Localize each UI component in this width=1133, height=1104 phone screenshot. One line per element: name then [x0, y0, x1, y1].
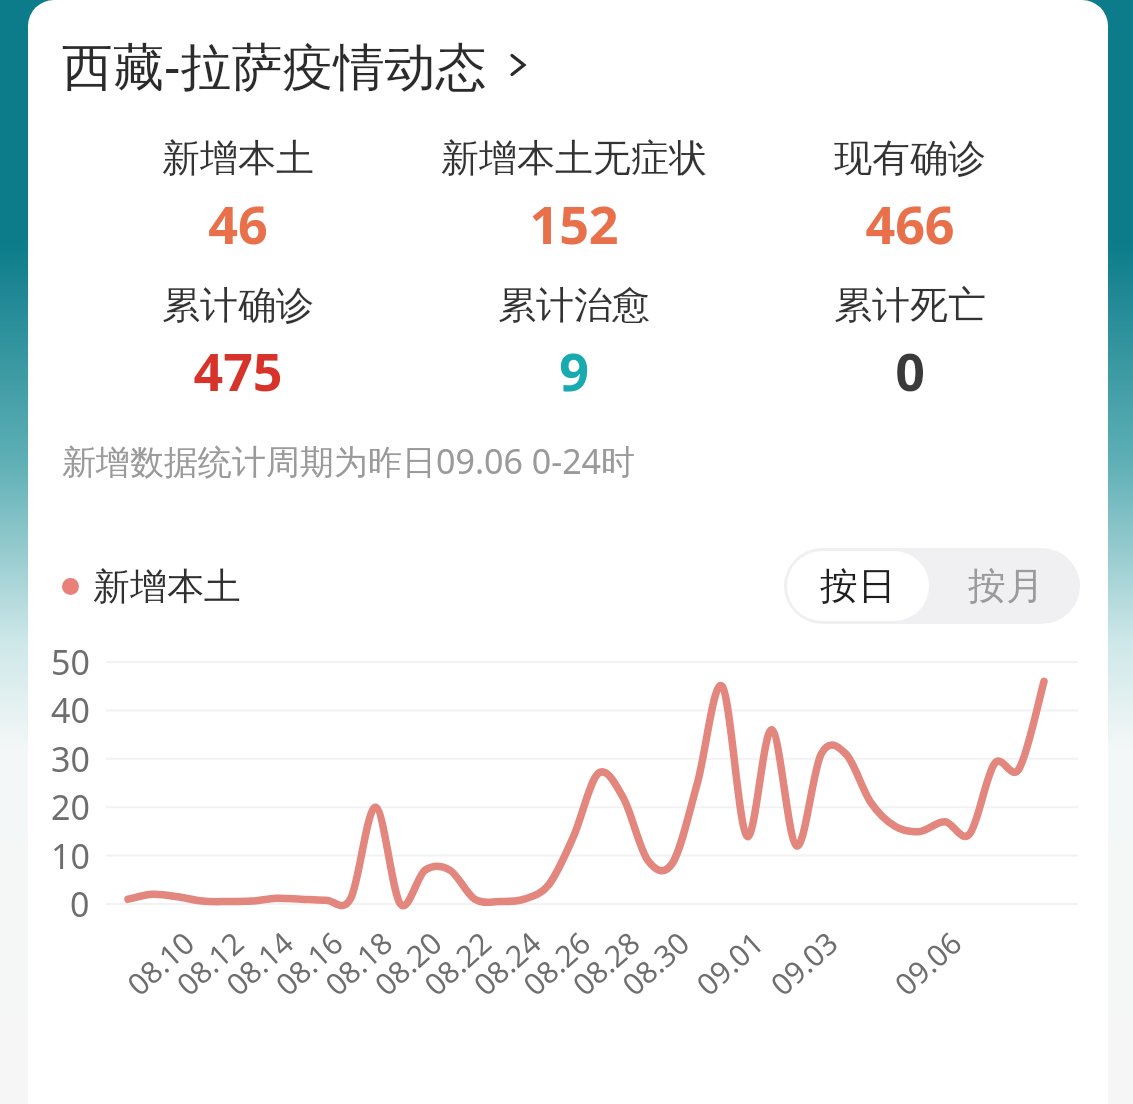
button[interactable]: 现有确诊 — [742, 134, 1078, 259]
staticText: 按月 — [968, 562, 1044, 610]
staticText: 466 — [865, 188, 955, 259]
button[interactable]: 新增本土 — [70, 134, 406, 259]
button[interactable]: 累计确诊 — [70, 281, 406, 406]
button[interactable]: 按月 — [932, 548, 1080, 624]
button[interactable]: 新增本土 — [62, 563, 241, 610]
button[interactable]: 新增本土无症状 — [406, 134, 742, 259]
staticText: 9 — [559, 335, 589, 406]
staticText: 0 — [895, 335, 925, 406]
button[interactable]: 累计死亡 — [742, 281, 1078, 406]
staticText: 新增本土 — [162, 134, 314, 182]
button[interactable]: 累计治愈 — [406, 281, 742, 406]
staticText: 152 — [529, 188, 619, 259]
staticText: 按日 — [820, 562, 896, 610]
staticText: 现有确诊 — [834, 134, 986, 182]
staticText: 西藏-拉萨疫情动态 — [62, 30, 487, 100]
staticText: 新增本土 — [93, 563, 241, 610]
staticText: 475 — [193, 335, 283, 406]
staticText: 新增数据统计周期为昨日09.06 0-24时 — [62, 438, 636, 484]
button[interactable]: 西藏-拉萨疫情动态 — [62, 30, 1074, 100]
staticText: 累计确诊 — [162, 281, 314, 329]
staticText: 新增本土无症状 — [441, 134, 707, 182]
button[interactable]: 按日 — [787, 551, 929, 621]
staticText: 累计治愈 — [498, 281, 650, 329]
staticText: 累计死亡 — [834, 281, 986, 329]
staticText: 46 — [208, 188, 268, 259]
